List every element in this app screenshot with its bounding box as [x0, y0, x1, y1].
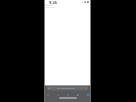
- staticText: en.wikipedia.org: [57, 87, 75, 90]
- button[interactable]: Search: [65, 92, 71, 98]
- button[interactable]: Home: [45, 92, 51, 98]
- button[interactable]: Account: [84, 92, 90, 98]
- button[interactable]: Search or type URL: [46, 86, 89, 91]
- button[interactable]: Tabs: [75, 92, 81, 98]
- button[interactable]: Back: [55, 92, 61, 98]
- staticText: 9:26: [49, 0, 57, 5]
